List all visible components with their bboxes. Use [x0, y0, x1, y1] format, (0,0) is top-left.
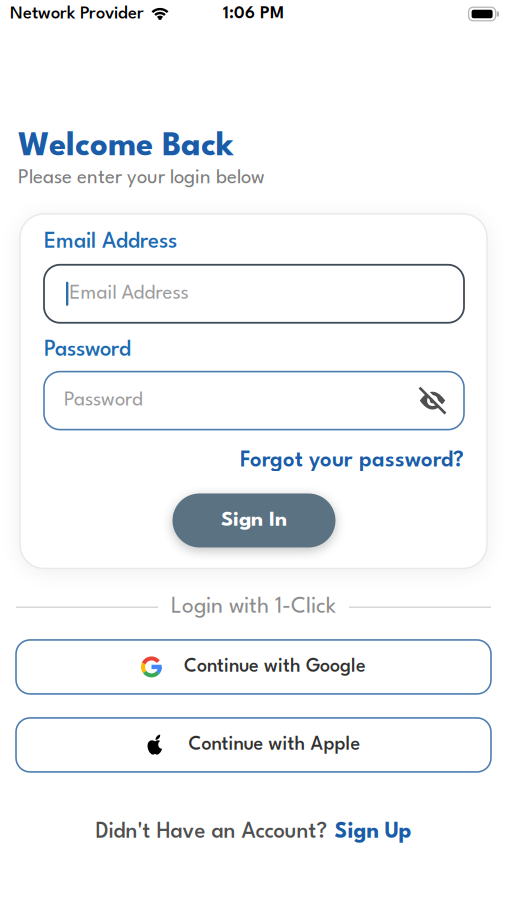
staticText: Email Address	[69, 284, 188, 303]
staticText: Please enter your login below	[18, 169, 265, 188]
button[interactable]: Continue with Apple	[16, 718, 491, 772]
button[interactable]: Continue with Google	[16, 640, 491, 694]
staticText: Login with 1-Click	[171, 596, 336, 618]
button[interactable]: Sign Up	[334, 822, 411, 843]
button[interactable]	[419, 387, 446, 414]
staticText: Network Provider	[10, 5, 144, 22]
staticText: Sign In	[221, 510, 287, 530]
staticText: Forgot your password?	[240, 451, 464, 471]
button[interactable]: Forgot your password?	[240, 451, 464, 471]
button[interactable]: Sign In	[172, 493, 335, 547]
staticText: Password	[64, 391, 143, 410]
staticText: Continue with Apple	[188, 736, 360, 754]
staticText: Email Address	[44, 232, 177, 253]
staticText: 1:06 PM	[223, 6, 284, 22]
staticText: Sign Up	[334, 822, 411, 843]
staticText: Didn't Have an Account?	[95, 822, 327, 843]
staticText: Password	[44, 340, 131, 361]
staticText: Welcome Back	[18, 131, 234, 163]
staticText: Continue with Google	[184, 658, 366, 676]
